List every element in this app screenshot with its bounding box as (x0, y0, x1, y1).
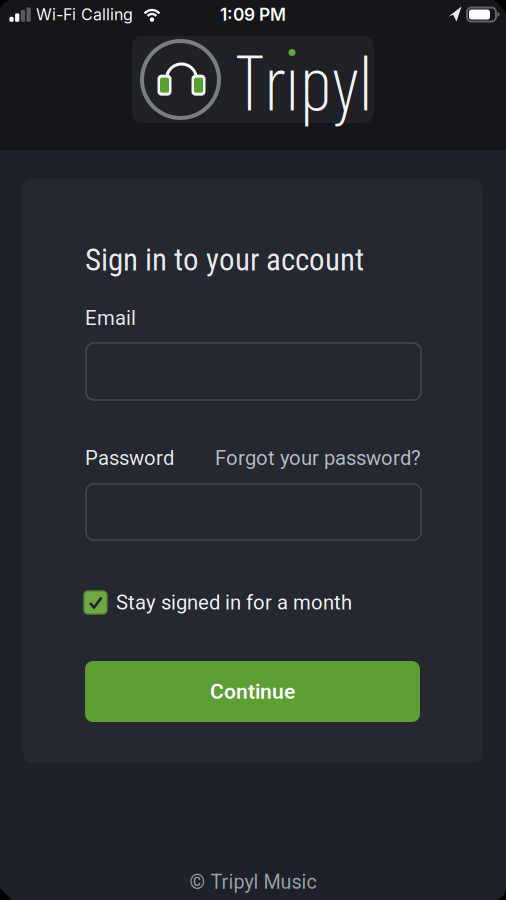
button[interactable] (86, 343, 421, 400)
button[interactable] (86, 484, 421, 540)
staticText: Wi-Fi Calling (36, 5, 133, 24)
button[interactable]: Continue (85, 661, 420, 722)
staticText: © Tripyl Music (189, 870, 316, 893)
button[interactable]: Forgot your password? (161, 446, 421, 470)
staticText: Email (85, 306, 136, 330)
staticText: Trıpyl (234, 32, 372, 126)
staticText: 1:09 PM (220, 4, 286, 25)
staticText: Stay signed in for a month (116, 591, 352, 614)
button[interactable]: Stay signed in for a month (84, 587, 444, 617)
staticText: Continue (210, 679, 295, 704)
staticText: Forgot your password? (215, 446, 421, 470)
staticText: Sign in to your account (85, 242, 364, 278)
staticText: Password (85, 446, 174, 470)
